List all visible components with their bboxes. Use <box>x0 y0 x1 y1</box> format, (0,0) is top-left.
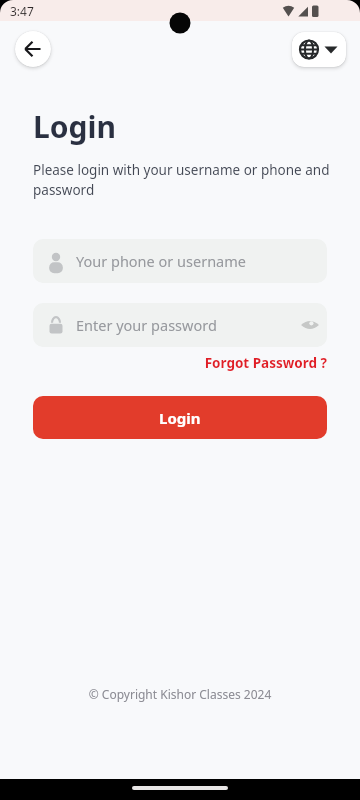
staticText: Login <box>159 408 201 428</box>
button[interactable]: Enter your password <box>33 303 327 347</box>
staticText: Login <box>33 106 116 147</box>
button[interactable] <box>292 32 346 67</box>
staticText: Enter your password <box>76 315 300 335</box>
staticText: Please login with your username or phone… <box>33 161 333 199</box>
button[interactable]: Login <box>33 396 327 439</box>
staticText: © Copyright Kishor Classes 2024 <box>0 686 360 702</box>
button[interactable] <box>300 315 320 335</box>
button[interactable] <box>15 31 51 67</box>
button[interactable]: Forgot Password ? <box>0 354 327 372</box>
staticText: Your phone or username <box>76 251 246 271</box>
button[interactable]: Your phone or username <box>33 239 327 283</box>
staticText: 3:47 <box>10 3 34 19</box>
